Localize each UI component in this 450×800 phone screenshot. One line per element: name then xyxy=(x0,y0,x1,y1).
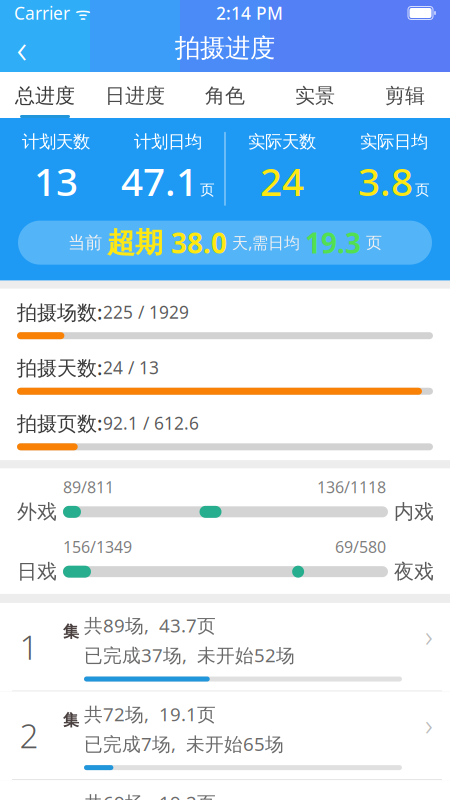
staticText: 47.1 xyxy=(121,155,198,207)
staticText: 外戏 xyxy=(17,500,57,524)
staticText: 共89场, 43.7页 xyxy=(84,613,216,638)
staticText: 共72场, 19.1页 xyxy=(84,701,216,726)
staticText: 拍摄页数: xyxy=(17,410,102,436)
staticText: 超期 xyxy=(107,225,171,260)
button[interactable]: 剪辑 xyxy=(360,72,450,118)
staticText: 内戏 xyxy=(394,500,434,524)
staticText: 2:14 PM xyxy=(216,1,283,24)
staticText: 已完成37场, 未开始52场 xyxy=(84,643,295,667)
staticText: 页 xyxy=(200,181,215,199)
staticText: › xyxy=(425,616,433,655)
staticText: 实际日均 xyxy=(360,131,428,152)
staticText: 日进度 xyxy=(105,83,165,108)
staticText: 24 xyxy=(260,155,304,207)
staticText: ᯤ xyxy=(70,1,91,24)
staticText: 156/1349 xyxy=(63,536,132,557)
button[interactable]: Back xyxy=(0,26,44,70)
staticText: 1 xyxy=(19,625,38,669)
staticText: ‹ xyxy=(16,21,27,74)
staticText: 页 xyxy=(361,233,382,252)
staticText: 136/1118 xyxy=(317,476,386,497)
staticText: 实景 xyxy=(295,83,335,108)
staticText: 38.0 xyxy=(171,224,227,261)
button[interactable]: 实景 xyxy=(270,72,360,118)
button[interactable]: 角色 xyxy=(180,72,270,118)
button[interactable]: 日进度 xyxy=(90,72,180,118)
staticText: 页 xyxy=(415,181,430,199)
button[interactable]: 当前 xyxy=(18,221,432,265)
staticText: 集 xyxy=(63,622,79,641)
staticText: › xyxy=(425,705,433,744)
staticText: 19.3 xyxy=(305,224,361,261)
staticText: 69/580 xyxy=(335,536,386,557)
button[interactable]: 总进度 xyxy=(0,72,90,118)
button[interactable]: 1 xyxy=(0,603,450,691)
staticText: 总进度 xyxy=(15,83,75,108)
staticText: 2 xyxy=(19,713,38,757)
button[interactable]: 2 xyxy=(0,691,450,780)
staticText: 角色 xyxy=(205,83,245,108)
staticText: 3.8 xyxy=(358,155,413,207)
staticText: 剪辑 xyxy=(385,83,425,108)
staticText: 共69场, 19.2页 xyxy=(84,790,216,800)
staticText: 当前 xyxy=(68,232,107,253)
staticText: 89/811 xyxy=(63,476,114,497)
staticText: 13 xyxy=(34,155,78,207)
staticText: 拍摄天数: xyxy=(17,354,102,381)
staticText: 92.1 / 612.6 xyxy=(103,411,199,434)
staticText: 已完成7场, 未开始65场 xyxy=(84,731,284,756)
staticText: Carrier xyxy=(14,1,70,24)
staticText: 天,需日均 xyxy=(227,232,305,253)
staticText: 日戏 xyxy=(17,559,57,584)
staticText: 实际天数 xyxy=(248,131,316,152)
staticText: 计划日均 xyxy=(134,131,202,152)
staticText: 拍摄场数: xyxy=(17,299,102,325)
staticText: 集 xyxy=(63,710,79,730)
staticText: 计划天数 xyxy=(22,131,90,152)
staticText: 225 / 1929 xyxy=(103,300,189,323)
button[interactable]: 3 xyxy=(0,780,450,800)
staticText: 夜戏 xyxy=(394,559,434,584)
staticText: 拍摄进度 xyxy=(175,32,275,63)
staticText: 24 / 13 xyxy=(103,356,159,379)
